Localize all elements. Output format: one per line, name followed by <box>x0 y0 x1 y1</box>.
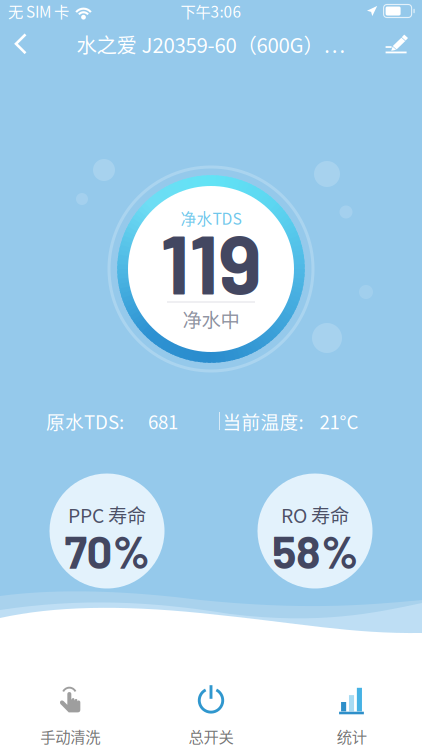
staticText: 70% <box>64 523 149 578</box>
staticText: 681 <box>148 407 178 434</box>
staticText: 原水TDS: <box>46 407 124 434</box>
staticText: 水之爱 J20359-60（600G）… <box>76 29 345 59</box>
button[interactable]: 手动清洗 <box>0 668 141 750</box>
staticText: PPC 寿命 <box>68 500 146 528</box>
staticText: RO 寿命 <box>281 500 349 528</box>
staticText: 58% <box>272 523 358 578</box>
button[interactable]: 总开关 <box>141 668 281 750</box>
button[interactable]: 统计 <box>281 668 422 750</box>
staticText: 当前温度: <box>222 407 303 434</box>
staticText: 净水TDS <box>180 207 241 229</box>
staticText: 净水中 <box>182 305 239 333</box>
button[interactable]: Back <box>0 22 44 66</box>
staticText: 下午3:06 <box>180 0 241 22</box>
staticText: 无 SIM 卡 <box>8 0 69 22</box>
staticText: 手动清洗 <box>40 725 100 747</box>
staticText: 119 <box>160 213 261 311</box>
staticText: 总开关 <box>188 725 233 747</box>
button[interactable]: Edit <box>372 23 422 65</box>
staticText: 21°C <box>319 407 358 434</box>
staticText: 统计 <box>337 725 367 747</box>
